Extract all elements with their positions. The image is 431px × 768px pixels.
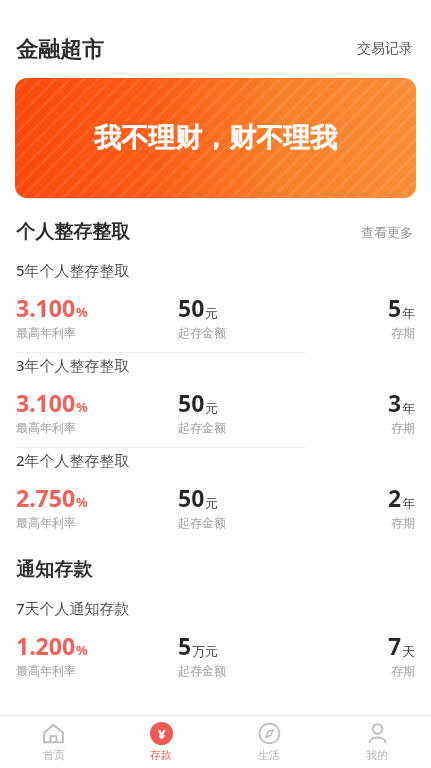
- staticText: 3.100: [16, 292, 76, 323]
- staticText: 万元: [192, 643, 218, 659]
- button[interactable]: 5年个人整存整取: [0, 258, 431, 352]
- staticText: 年: [402, 305, 415, 321]
- button[interactable]: 存款: [107, 716, 215, 768]
- staticText: 5: [178, 630, 192, 661]
- button[interactable]: 2年个人整存整取: [0, 448, 431, 542]
- staticText: 天: [402, 643, 415, 659]
- button[interactable]: 生活: [215, 716, 323, 768]
- staticText: 50: [178, 292, 205, 323]
- staticText: 存期: [391, 663, 415, 678]
- staticText: 50: [178, 482, 205, 513]
- staticText: 年: [402, 495, 415, 511]
- staticText: 5年个人整存整取: [16, 260, 130, 280]
- staticText: %: [76, 493, 88, 511]
- staticText: ¥: [158, 725, 166, 743]
- staticText: 2年个人整存整取: [16, 450, 130, 470]
- staticText: 起存金额: [178, 420, 226, 435]
- button[interactable]: 交易记录: [355, 38, 415, 60]
- button[interactable]: 我不理财，财不理我: [15, 78, 416, 198]
- staticText: 50: [178, 387, 205, 418]
- staticText: 年: [402, 400, 415, 416]
- staticText: 1.200: [16, 630, 76, 661]
- staticText: %: [76, 641, 88, 659]
- staticText: 存期: [391, 325, 415, 340]
- staticText: 元: [205, 305, 218, 321]
- staticText: 存期: [391, 420, 415, 435]
- staticText: 生活: [258, 748, 280, 762]
- staticText: 7: [388, 630, 402, 661]
- staticText: 3: [388, 387, 402, 418]
- staticText: 通知存款: [16, 558, 92, 582]
- staticText: 首页: [43, 748, 65, 762]
- button[interactable]: 首页: [0, 716, 107, 768]
- staticText: 金融超市: [16, 36, 104, 64]
- staticText: 起存金额: [178, 515, 226, 530]
- staticText: 最高年利率: [16, 515, 76, 530]
- staticText: 2: [388, 482, 402, 513]
- staticText: 7天个人通知存款: [16, 598, 130, 618]
- staticText: 2.750: [16, 482, 76, 513]
- staticText: 查看更多: [361, 224, 413, 240]
- staticText: 存款: [150, 748, 172, 762]
- button[interactable]: 7天个人通知存款: [0, 596, 431, 690]
- staticText: 存期: [391, 515, 415, 530]
- staticText: 3年个人整存整取: [16, 355, 130, 375]
- staticText: 个人整存整取: [16, 220, 130, 244]
- staticText: 5: [388, 292, 402, 323]
- button[interactable]: 3年个人整存整取: [0, 353, 431, 447]
- staticText: 我的: [366, 748, 388, 762]
- button[interactable]: 查看更多: [359, 220, 415, 244]
- staticText: %: [76, 398, 88, 416]
- staticText: 我不理财，财不理我: [94, 121, 337, 155]
- staticText: 交易记录: [357, 40, 413, 58]
- staticText: 最高年利率: [16, 325, 76, 340]
- staticText: 起存金额: [178, 325, 226, 340]
- button[interactable]: 我的: [323, 716, 431, 768]
- staticText: 起存金额: [178, 663, 226, 678]
- staticText: 元: [205, 495, 218, 511]
- staticText: 最高年利率: [16, 420, 76, 435]
- staticText: 元: [205, 400, 218, 416]
- staticText: 3.100: [16, 387, 76, 418]
- staticText: 最高年利率: [16, 663, 76, 678]
- staticText: %: [76, 303, 88, 321]
